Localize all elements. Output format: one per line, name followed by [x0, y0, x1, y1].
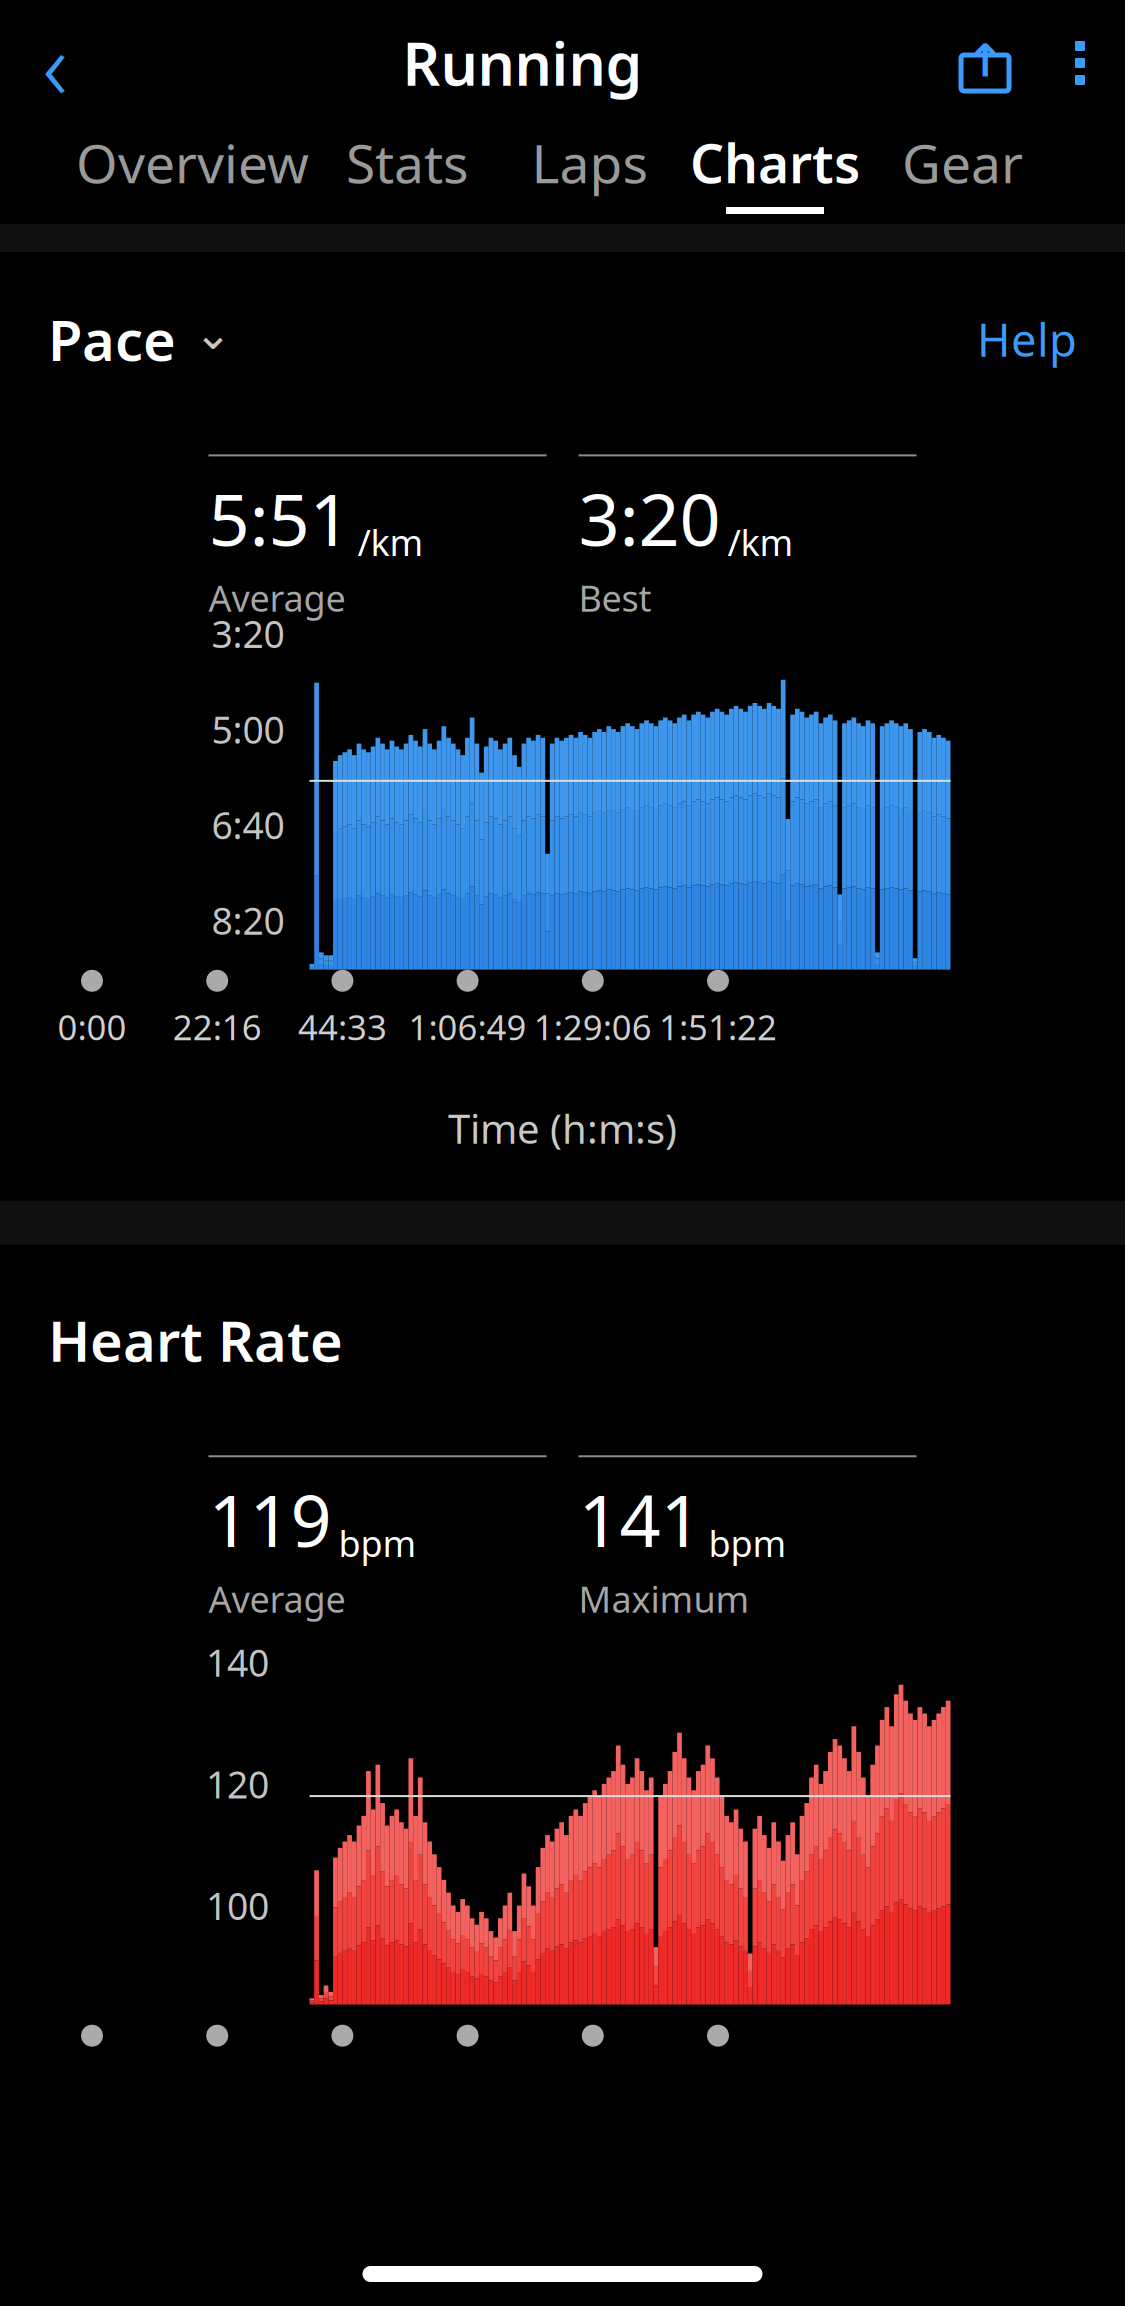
button[interactable]: Overview	[72, 118, 312, 224]
button[interactable]: Pace	[48, 302, 232, 376]
staticText: 1:06:49	[409, 1004, 527, 1050]
staticText: Time (h:m:s)	[448, 1102, 677, 1155]
staticText: 5:51	[208, 470, 350, 566]
staticText: Laps	[531, 127, 648, 198]
staticText: 119	[208, 1471, 331, 1567]
staticText: Charts	[690, 127, 860, 198]
staticText: bpm	[708, 1519, 786, 1567]
staticText: 141	[578, 1471, 701, 1567]
staticText: Help	[977, 309, 1077, 369]
staticText: 80	[227, 2002, 269, 2052]
staticText: ⌄	[194, 307, 232, 359]
button[interactable]: Back	[0, 8, 110, 118]
button[interactable]: Help	[977, 309, 1077, 369]
staticText: 10:00	[190, 991, 284, 1041]
staticText: ‹	[42, 0, 67, 127]
staticText: Average	[208, 1575, 345, 1623]
staticText: 1:29:06	[534, 1004, 652, 1050]
staticText: 120	[206, 1759, 269, 1809]
staticText: /km	[357, 518, 423, 566]
staticText: Maximum	[578, 1575, 749, 1623]
staticText: 3:20	[211, 609, 284, 658]
staticText: Gear	[902, 127, 1023, 198]
button[interactable]: Charts	[677, 118, 872, 224]
button[interactable]: Laps	[502, 118, 677, 224]
staticText: 100	[206, 1881, 269, 1930]
staticText: Pace	[48, 302, 176, 376]
staticText: Stats	[346, 127, 469, 198]
staticText: 3:20	[578, 470, 720, 566]
staticText: bpm	[338, 1519, 416, 1567]
button[interactable]: Stats	[312, 118, 502, 224]
button[interactable]: Gear	[872, 118, 1052, 224]
staticText: 1:51:22	[659, 1004, 777, 1050]
staticText: 44:33	[298, 1004, 387, 1050]
button[interactable]: More options	[1035, 8, 1125, 118]
staticText: 0:00	[57, 1004, 126, 1050]
staticText: Best	[578, 574, 651, 622]
staticText: 8:20	[211, 896, 284, 945]
staticText: Heart Rate	[48, 1303, 343, 1377]
staticText: Overview	[76, 127, 309, 198]
staticText: Average	[208, 574, 345, 622]
staticText: 6:40	[211, 800, 284, 850]
staticText: 140	[206, 1637, 269, 1687]
button[interactable]: Share	[935, 8, 1035, 118]
staticText: /km	[727, 518, 793, 566]
staticText: ↑	[966, 35, 1004, 86]
staticText: Running	[402, 24, 642, 102]
staticText: 22:16	[173, 1004, 262, 1050]
staticText: 5:00	[211, 704, 284, 754]
